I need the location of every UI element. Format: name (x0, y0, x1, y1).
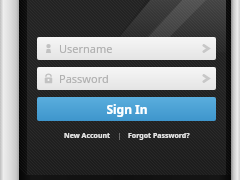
staticText: New Account (64, 131, 111, 141)
button[interactable]: Sign In (37, 97, 216, 121)
button[interactable]: Password (37, 67, 216, 90)
button[interactable]: Forgot Password? (125, 129, 193, 143)
staticText: Forgot Password? (128, 131, 190, 141)
staticText: Username (59, 41, 113, 56)
button[interactable]: Username (37, 37, 216, 60)
button[interactable]: New Account (61, 129, 114, 143)
staticText: Sign In (106, 101, 148, 117)
staticText: Password (59, 71, 109, 86)
